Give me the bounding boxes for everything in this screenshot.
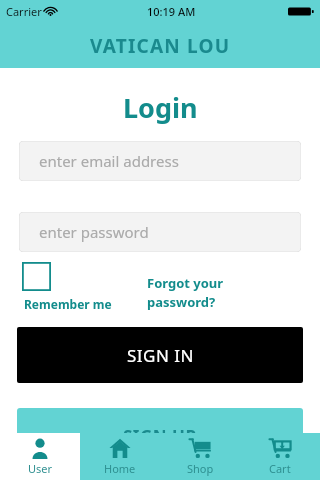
staticText: Cart <box>269 461 291 476</box>
staticText: User <box>28 461 53 476</box>
staticText: VATICAN LOU <box>90 33 231 59</box>
staticText: Carrier <box>6 4 42 19</box>
staticText: SIGN IN <box>127 344 194 367</box>
staticText: enter password <box>39 222 149 242</box>
staticText: password? <box>147 293 216 311</box>
staticText: Forgot your <box>147 274 224 292</box>
button[interactable]: Remember me <box>22 262 51 291</box>
staticText: Login <box>123 89 198 126</box>
button[interactable]: Cart <box>240 433 320 480</box>
button[interactable]: enter password <box>19 212 301 252</box>
button[interactable]: Shop <box>160 433 240 480</box>
staticText: Home <box>104 461 136 476</box>
button[interactable]: SIGN IN <box>17 327 303 383</box>
button[interactable]: enter email address <box>19 141 301 181</box>
button[interactable]: Forgot your <box>147 274 224 311</box>
staticText: SIGN UP <box>123 425 197 448</box>
staticText: enter email address <box>39 151 179 171</box>
button[interactable]: SIGN UP <box>17 408 303 464</box>
staticText: Remember me <box>24 296 112 312</box>
staticText: Shop <box>187 461 214 476</box>
button[interactable]: User <box>0 433 80 480</box>
button[interactable]: Home <box>80 433 160 480</box>
staticText: 10:19 AM <box>147 4 196 19</box>
button[interactable]: Remember me <box>24 296 112 312</box>
